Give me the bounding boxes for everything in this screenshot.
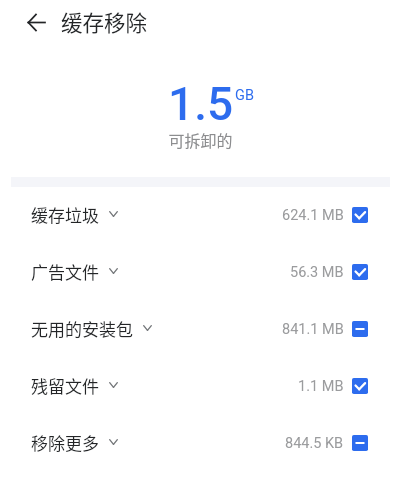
- staticText: 残留文件: [31, 373, 99, 398]
- staticText: 缓存移除: [61, 6, 148, 37]
- staticText: GB: [235, 87, 254, 104]
- staticText: 56.3 MB: [290, 264, 344, 281]
- staticText: 移除更多: [31, 430, 99, 455]
- button[interactable]: 残留文件: [0, 357, 397, 414]
- staticText: 1.1 MB: [298, 378, 344, 395]
- button[interactable]: Partially selected: [352, 435, 368, 451]
- button[interactable]: 缓存垃圾: [0, 186, 397, 243]
- staticText: 624.1 MB: [282, 207, 344, 224]
- staticText: 844.5 KB: [285, 435, 344, 452]
- staticText: 841.1 MB: [282, 321, 344, 338]
- staticText: 缓存垃圾: [31, 202, 99, 227]
- button[interactable]: Selected: [352, 207, 368, 223]
- button[interactable]: 广告文件: [0, 243, 397, 300]
- button[interactable]: 移除更多: [0, 414, 397, 471]
- button[interactable]: Selected: [352, 264, 368, 280]
- staticText: 1.5: [168, 77, 234, 131]
- button[interactable]: Back: [28, 14, 45, 31]
- button[interactable]: Selected: [352, 378, 368, 394]
- staticText: 无用的安装包: [31, 316, 133, 341]
- button[interactable]: Partially selected: [352, 321, 368, 337]
- staticText: 广告文件: [31, 259, 99, 284]
- button[interactable]: 无用的安装包: [0, 300, 397, 357]
- staticText: 可拆卸的: [2, 128, 397, 151]
